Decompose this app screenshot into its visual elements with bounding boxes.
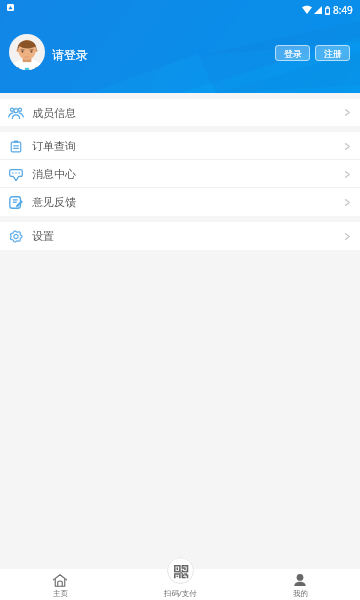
button[interactable]: 注册 (315, 45, 350, 61)
button[interactable]: 成员信息 (0, 99, 360, 126)
button[interactable]: Avatar (9, 34, 45, 70)
staticText: 主页 (53, 589, 68, 598)
button[interactable]: 我的 (285, 569, 315, 600)
button[interactable]: 消息中心 (0, 160, 360, 188)
staticText: 8:49 (333, 3, 353, 17)
staticText: 我的 (293, 589, 308, 598)
staticText: 意见反馈 (32, 195, 76, 209)
button[interactable]: 意见反馈 (0, 188, 360, 216)
button[interactable]: 主页 (45, 569, 75, 600)
button[interactable]: 扫码/支付 (160, 557, 200, 600)
staticText: 成员信息 (32, 106, 76, 120)
button[interactable]: 请登录 (52, 47, 88, 62)
button[interactable]: 登录 (275, 45, 310, 61)
staticText: 注册 (324, 48, 342, 59)
staticText: 扫码/支付 (164, 588, 197, 598)
button[interactable]: 设置 (0, 222, 360, 250)
button[interactable]: 订单查询 (0, 132, 360, 160)
staticText: 消息中心 (32, 167, 76, 181)
staticText: 设置 (32, 229, 54, 243)
staticText: 订单查询 (32, 139, 76, 153)
staticText: 登录 (284, 48, 302, 59)
